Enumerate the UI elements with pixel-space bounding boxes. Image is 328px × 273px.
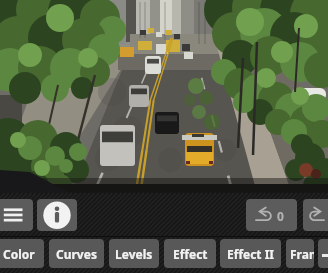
button[interactable]: Color bbox=[0, 239, 44, 268]
button[interactable] bbox=[0, 199, 33, 231]
staticText: Effect II bbox=[227, 246, 275, 262]
staticText: Levels bbox=[115, 246, 153, 262]
button[interactable]: Levels bbox=[109, 239, 159, 268]
button[interactable]: Curves bbox=[49, 239, 104, 268]
button[interactable]: 0 bbox=[246, 199, 297, 231]
staticText: 0 bbox=[277, 208, 284, 224]
staticText: Frame bbox=[290, 246, 314, 262]
button[interactable] bbox=[37, 199, 77, 231]
button[interactable] bbox=[303, 199, 328, 231]
button[interactable]: Effect II bbox=[220, 239, 281, 268]
staticText: Effect bbox=[173, 246, 208, 262]
button[interactable]: Frame bbox=[286, 239, 314, 268]
button[interactable] bbox=[318, 239, 328, 268]
staticText: Color bbox=[3, 246, 35, 262]
button[interactable]: Effect bbox=[164, 239, 216, 268]
staticText: Curves bbox=[56, 246, 97, 262]
